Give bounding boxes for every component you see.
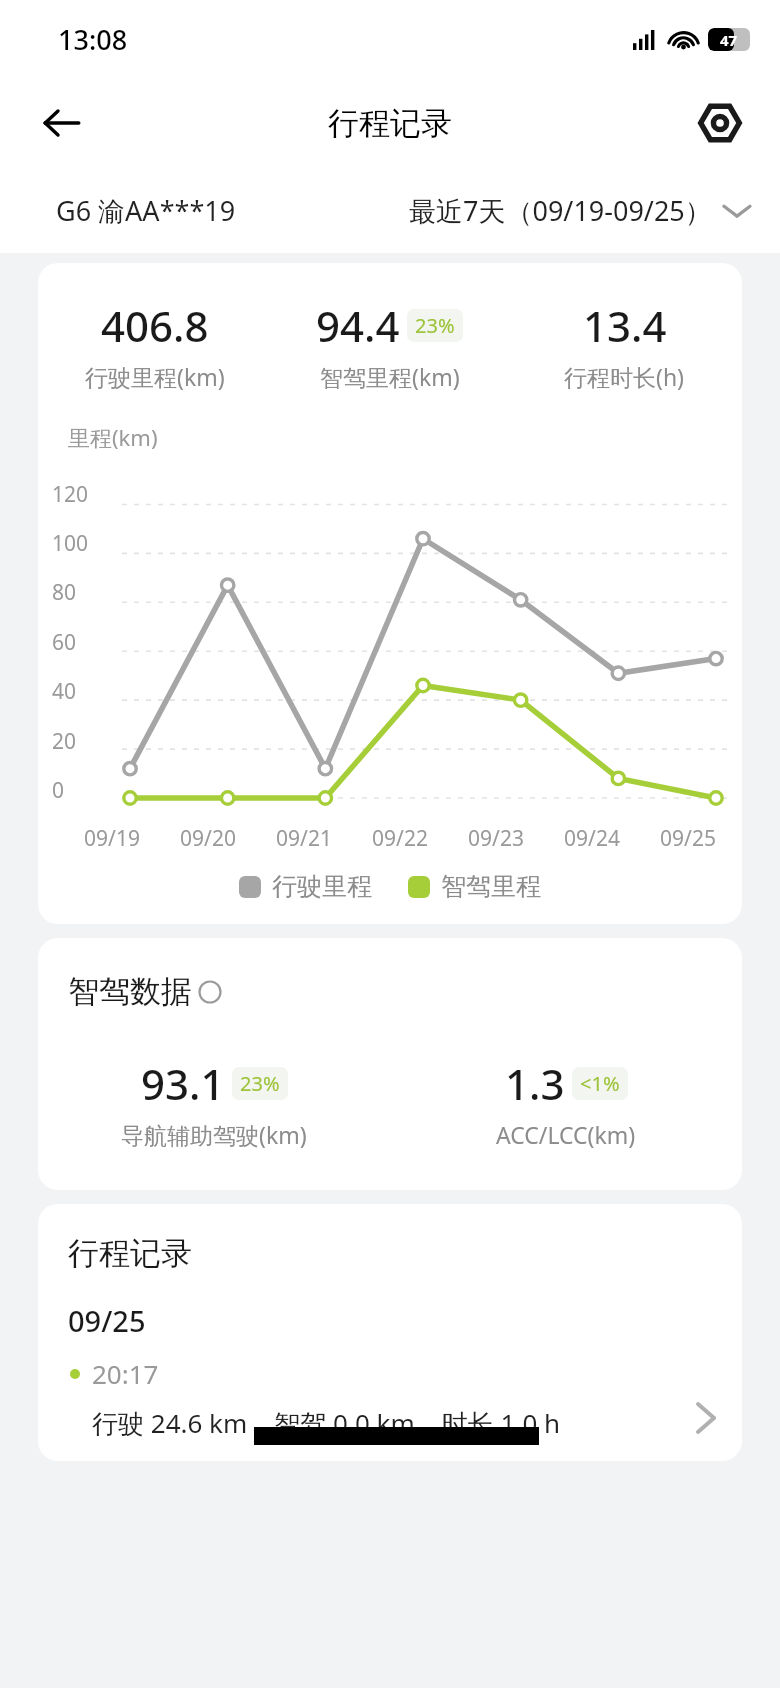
staticText: 09/21 (276, 824, 332, 853)
staticText: 40 (52, 677, 77, 706)
button[interactable]: 智驾里程 (408, 871, 541, 902)
staticText: 导航辅助驾驶(km) (121, 1119, 307, 1150)
staticText: 09/22 (372, 824, 428, 853)
button[interactable]: 智驾数据 (68, 972, 222, 1011)
staticText: 行驶 24.6 km 智驾 0.0 km 时长 1.0 h (92, 1405, 561, 1441)
staticText: 406.8 (101, 297, 209, 354)
staticText: 09/23 (468, 824, 524, 853)
staticText: 09/25 (68, 1301, 146, 1340)
staticText: 智驾里程 (441, 871, 541, 902)
staticText: 智驾数据 (68, 972, 192, 1011)
staticText: 20 (52, 727, 77, 756)
staticText: 23% (415, 312, 455, 339)
staticText: 93.1 (141, 1055, 225, 1112)
staticText: 里程(km) (68, 422, 158, 452)
staticText: <1% (580, 1070, 620, 1097)
staticText: 20:17 (92, 1356, 159, 1391)
staticText: 120 (52, 480, 89, 509)
button[interactable]: Back (34, 95, 90, 151)
button[interactable]: 行驶里程 (239, 871, 372, 902)
staticText: ACC/LCC(km) (496, 1119, 636, 1150)
staticText: 最近7天（09/19-09/25） (409, 192, 712, 229)
staticText: 13:08 (58, 21, 128, 58)
staticText: 1.3 (505, 1055, 565, 1112)
staticText: 60 (52, 628, 77, 657)
staticText: 09/19 (84, 824, 140, 853)
staticText: 100 (52, 529, 89, 558)
staticText: 行程记录 (68, 1234, 192, 1273)
staticText: 行驶里程(km) (85, 361, 225, 392)
staticText: 80 (52, 578, 77, 607)
staticText: 47 (720, 30, 738, 50)
staticText: 23% (240, 1070, 280, 1097)
staticText: 13.4 (583, 297, 667, 354)
staticText: 行驶里程 (272, 871, 372, 902)
staticText: 行程记录 (328, 104, 452, 143)
button[interactable]: Settings (692, 95, 748, 151)
button[interactable]: 20:17 (38, 1356, 742, 1441)
button[interactable]: 最近7天（09/19-09/25） (409, 192, 750, 229)
staticText: 行程时长(h) (564, 361, 685, 392)
button[interactable]: G6 渝AA***19 (56, 192, 236, 229)
staticText: 09/20 (180, 824, 236, 853)
staticText: 智驾里程(km) (320, 361, 460, 392)
staticText: 0 (52, 776, 65, 805)
staticText: 09/24 (564, 824, 620, 853)
staticText: 94.4 (316, 297, 400, 354)
staticText: 09/25 (660, 824, 716, 853)
